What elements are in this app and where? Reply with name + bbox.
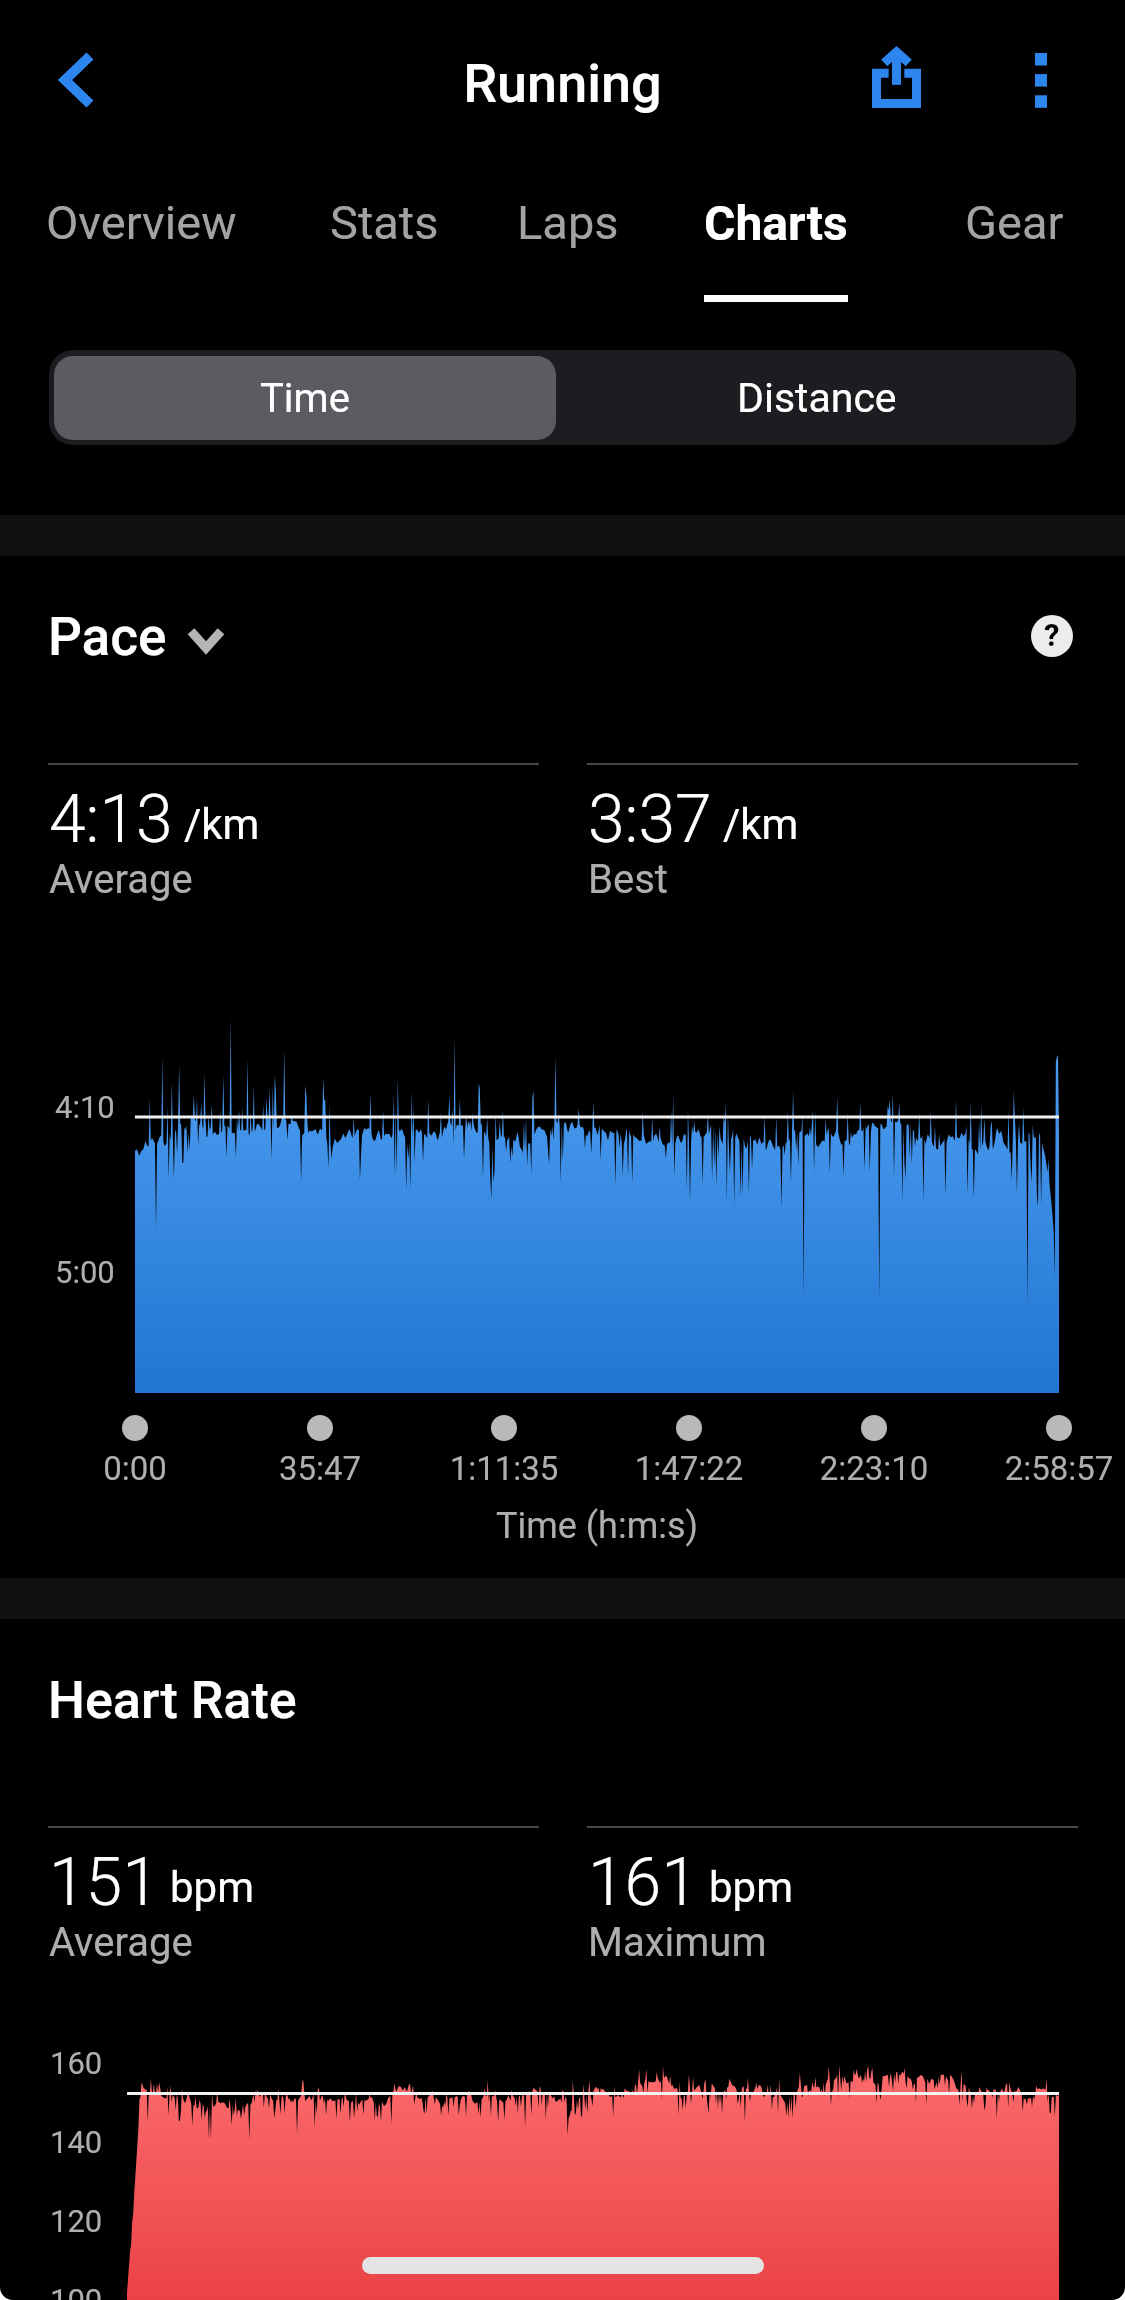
staticText: /km	[723, 800, 799, 849]
button[interactable]: Overview	[31, 176, 251, 311]
staticText: 161	[588, 1844, 698, 1921]
staticText: 1:11:35	[394, 1449, 614, 1488]
staticText: 2:23:10	[764, 1449, 984, 1488]
staticText: 35:47	[210, 1449, 430, 1488]
button[interactable]: Distance	[563, 356, 1071, 440]
button[interactable]: Charts	[666, 176, 886, 311]
staticText: 151	[49, 1844, 159, 1921]
staticText: Time (h:m:s)	[397, 1505, 797, 1547]
staticText: ?	[1044, 617, 1060, 653]
staticText: /km	[184, 800, 260, 849]
staticText: Average	[49, 1919, 193, 1966]
staticText: 5:00	[55, 1254, 115, 1290]
button[interactable]: Laps	[458, 176, 678, 311]
staticText: Pace	[48, 606, 167, 668]
button[interactable]: Share	[843, 25, 953, 135]
staticText: bpm	[170, 1863, 254, 1912]
staticText: Heart Rate	[48, 1670, 297, 1731]
staticText: 4:13	[49, 781, 173, 858]
staticText: 140	[50, 2124, 103, 2160]
button[interactable]: Back	[25, 25, 135, 135]
staticText: 120	[50, 2203, 103, 2239]
staticText: Stats	[330, 195, 439, 250]
button[interactable]: Time	[54, 356, 556, 440]
staticText: Maximum	[588, 1919, 767, 1966]
staticText: Distance	[737, 374, 897, 422]
staticText: 100	[50, 2282, 103, 2300]
staticText: Laps	[517, 195, 619, 250]
staticText: bpm	[709, 1863, 793, 1912]
staticText: Best	[588, 856, 668, 903]
staticText: Charts	[704, 195, 848, 251]
button[interactable]: More options	[990, 25, 1100, 135]
button[interactable]: Gear	[904, 176, 1124, 311]
staticText: Gear	[965, 195, 1064, 250]
staticText: Time	[260, 375, 350, 422]
staticText: Average	[49, 856, 193, 903]
button[interactable]: Stats	[274, 176, 494, 311]
staticText: 1:47:22	[579, 1449, 799, 1488]
button[interactable]: Pace	[48, 606, 225, 668]
staticText: 160	[50, 2045, 103, 2081]
staticText: 0:00	[25, 1449, 245, 1488]
staticText: 2:58:57	[949, 1449, 1125, 1488]
button[interactable]: Help	[1031, 615, 1073, 657]
staticText: Overview	[46, 195, 237, 250]
staticText: Running	[0, 52, 1125, 115]
staticText: 3:37	[588, 781, 712, 858]
staticText: 4:10	[55, 1089, 115, 1125]
